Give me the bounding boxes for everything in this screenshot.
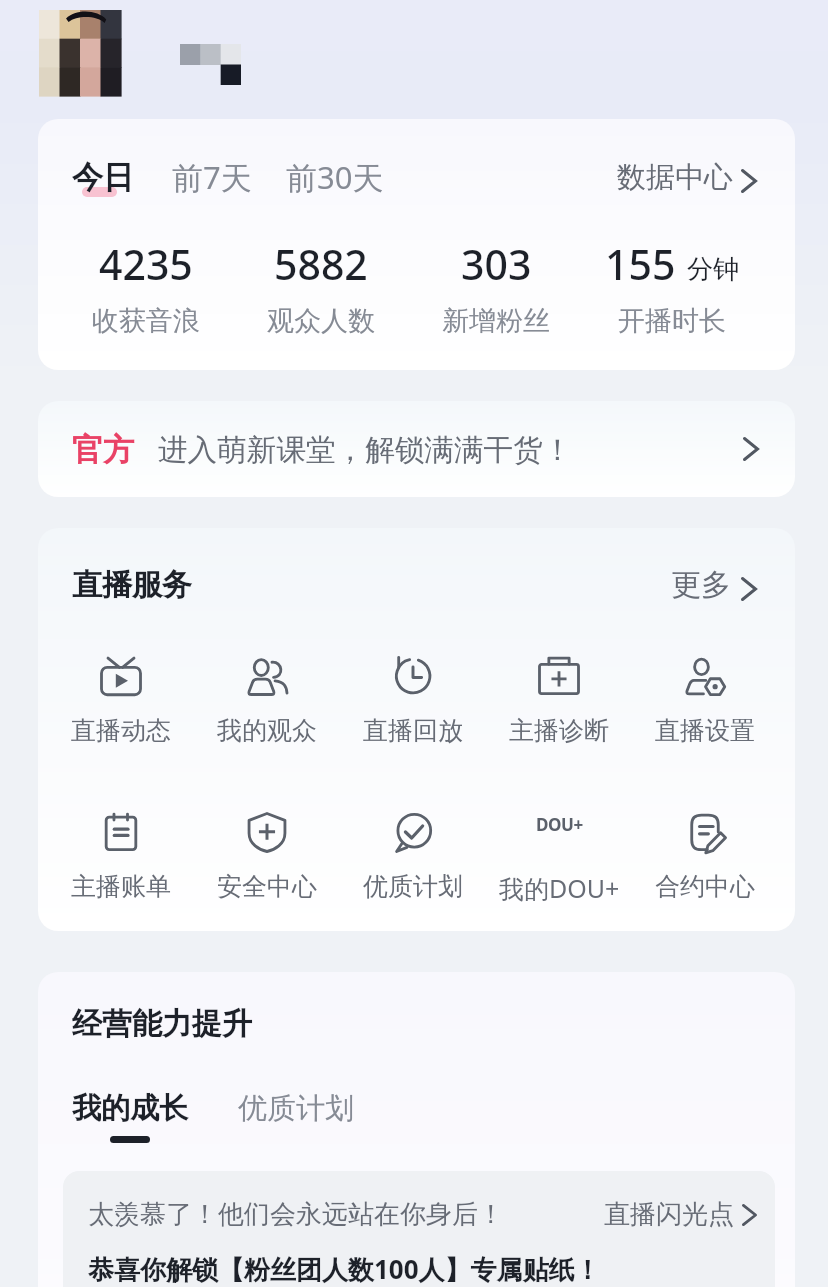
button[interactable]: 官方	[38, 401, 795, 497]
button[interactable]: 主播账单	[48, 806, 194, 902]
button[interactable]: 303	[408, 236, 584, 338]
button[interactable]: 我的成长	[72, 1090, 188, 1143]
staticText: 太羡慕了！他们会永远站在你身后！	[88, 1198, 504, 1231]
staticText: 直播动态	[71, 715, 171, 746]
button[interactable]: 合约中心	[632, 806, 778, 902]
button[interactable]: 今日	[72, 158, 134, 197]
staticText: 直播回放	[363, 715, 463, 746]
button[interactable]: 太羡慕了！他们会永远站在你身后！	[63, 1171, 775, 1287]
staticText: 经营能力提升	[72, 1005, 252, 1043]
button[interactable]: 直播回放	[340, 650, 486, 746]
staticText: 今日	[72, 158, 134, 197]
button[interactable]: 更多	[671, 566, 757, 604]
staticText: 我的成长	[72, 1090, 188, 1127]
button[interactable]: 优质计划	[238, 1090, 354, 1127]
staticText: 开播时长	[618, 304, 726, 338]
staticText: 收获音浪	[92, 304, 200, 338]
button[interactable]: 5882	[233, 236, 408, 338]
button[interactable]: 数据中心	[617, 159, 757, 196]
staticText: 主播账单	[71, 871, 171, 902]
staticText: 官方	[72, 430, 134, 469]
staticText: 4235	[99, 236, 193, 292]
button[interactable]: 4235	[58, 236, 233, 338]
staticText: 前30天	[286, 156, 384, 198]
staticText: 前7天	[172, 156, 252, 198]
staticText: 优质计划	[363, 871, 463, 902]
staticText: 安全中心	[217, 871, 317, 902]
staticText: 直播闪光点	[604, 1198, 734, 1231]
button[interactable]: DOU+	[486, 806, 632, 905]
staticText: 恭喜你解锁【粉丝团人数100人】专属贴纸！	[88, 1251, 601, 1287]
button[interactable]: 直播动态	[48, 650, 194, 746]
staticText: 5882	[274, 236, 368, 292]
staticText: 数据中心	[617, 159, 733, 196]
button[interactable]: 前30天	[286, 156, 384, 198]
staticText: 主播诊断	[509, 715, 609, 746]
staticText: 我的观众	[217, 715, 317, 746]
button[interactable]: 155	[584, 236, 760, 338]
button[interactable]: Profile avatar	[39, 10, 121, 96]
button[interactable]: 直播设置	[632, 650, 778, 746]
staticText: 155	[605, 236, 676, 292]
staticText: 合约中心	[655, 871, 755, 902]
button[interactable]: 优质计划	[340, 806, 486, 902]
staticText: 303	[461, 236, 532, 292]
staticText: 观众人数	[267, 304, 375, 338]
staticText: 直播服务	[72, 566, 192, 604]
button[interactable]: Account name	[180, 44, 241, 85]
staticText: DOU+	[536, 813, 583, 836]
staticText: 进入萌新课堂，解锁满满干货！	[158, 431, 573, 468]
staticText: 新增粉丝	[442, 304, 550, 338]
button[interactable]: 我的观众	[194, 650, 340, 746]
button[interactable]: 主播诊断	[486, 650, 632, 746]
staticText: 优质计划	[238, 1090, 354, 1127]
button[interactable]: 前7天	[172, 156, 252, 198]
staticText: 我的DOU+	[499, 871, 620, 905]
staticText: 分钟	[687, 253, 739, 286]
staticText: 直播设置	[655, 715, 755, 746]
button[interactable]: 安全中心	[194, 806, 340, 902]
staticText: 更多	[671, 566, 731, 604]
